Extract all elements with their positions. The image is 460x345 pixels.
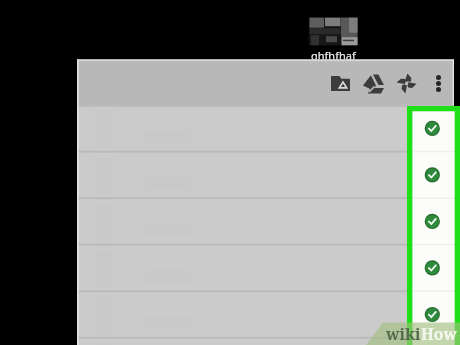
button[interactable]: Save to Drive folder [324, 67, 357, 100]
staticText: How [421, 323, 457, 344]
button[interactable]: List item [77, 198, 454, 245]
button[interactable]: List item [77, 291, 454, 338]
button[interactable]: Google Drive [357, 67, 390, 100]
button[interactable]: More options [423, 68, 454, 99]
button[interactable]: List item [77, 151, 454, 198]
button[interactable]: Google Photos [390, 67, 423, 100]
button[interactable]: List item [77, 244, 454, 291]
staticText: wiki [386, 323, 421, 344]
button[interactable]: List item [77, 338, 454, 345]
button[interactable]: List item [77, 105, 454, 151]
staticText: ghfhfhaf [311, 48, 356, 63]
